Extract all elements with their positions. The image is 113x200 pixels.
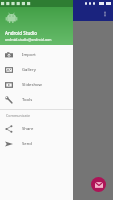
button[interactable]: Compose email [91,177,106,192]
staticText: Import [22,52,36,58]
staticText: Gallery [22,67,36,73]
button[interactable]: Import [0,47,73,62]
staticText: Communicate [6,113,31,118]
button[interactable]: Gallery [0,62,73,77]
button[interactable]: Tools [0,92,73,107]
staticText: Android Studio [5,30,38,36]
button[interactable]: Share [0,121,73,136]
button[interactable]: Send [0,136,73,151]
staticText: Send [22,141,32,147]
staticText: Tools [22,97,33,103]
button[interactable]: Slideshow [0,77,73,92]
button[interactable]: More options [101,10,109,18]
staticText: Share [22,126,34,132]
staticText: Slideshow [22,82,42,88]
button[interactable]: Android Studio [0,7,73,45]
staticText: android.studio@android.com [5,37,52,42]
